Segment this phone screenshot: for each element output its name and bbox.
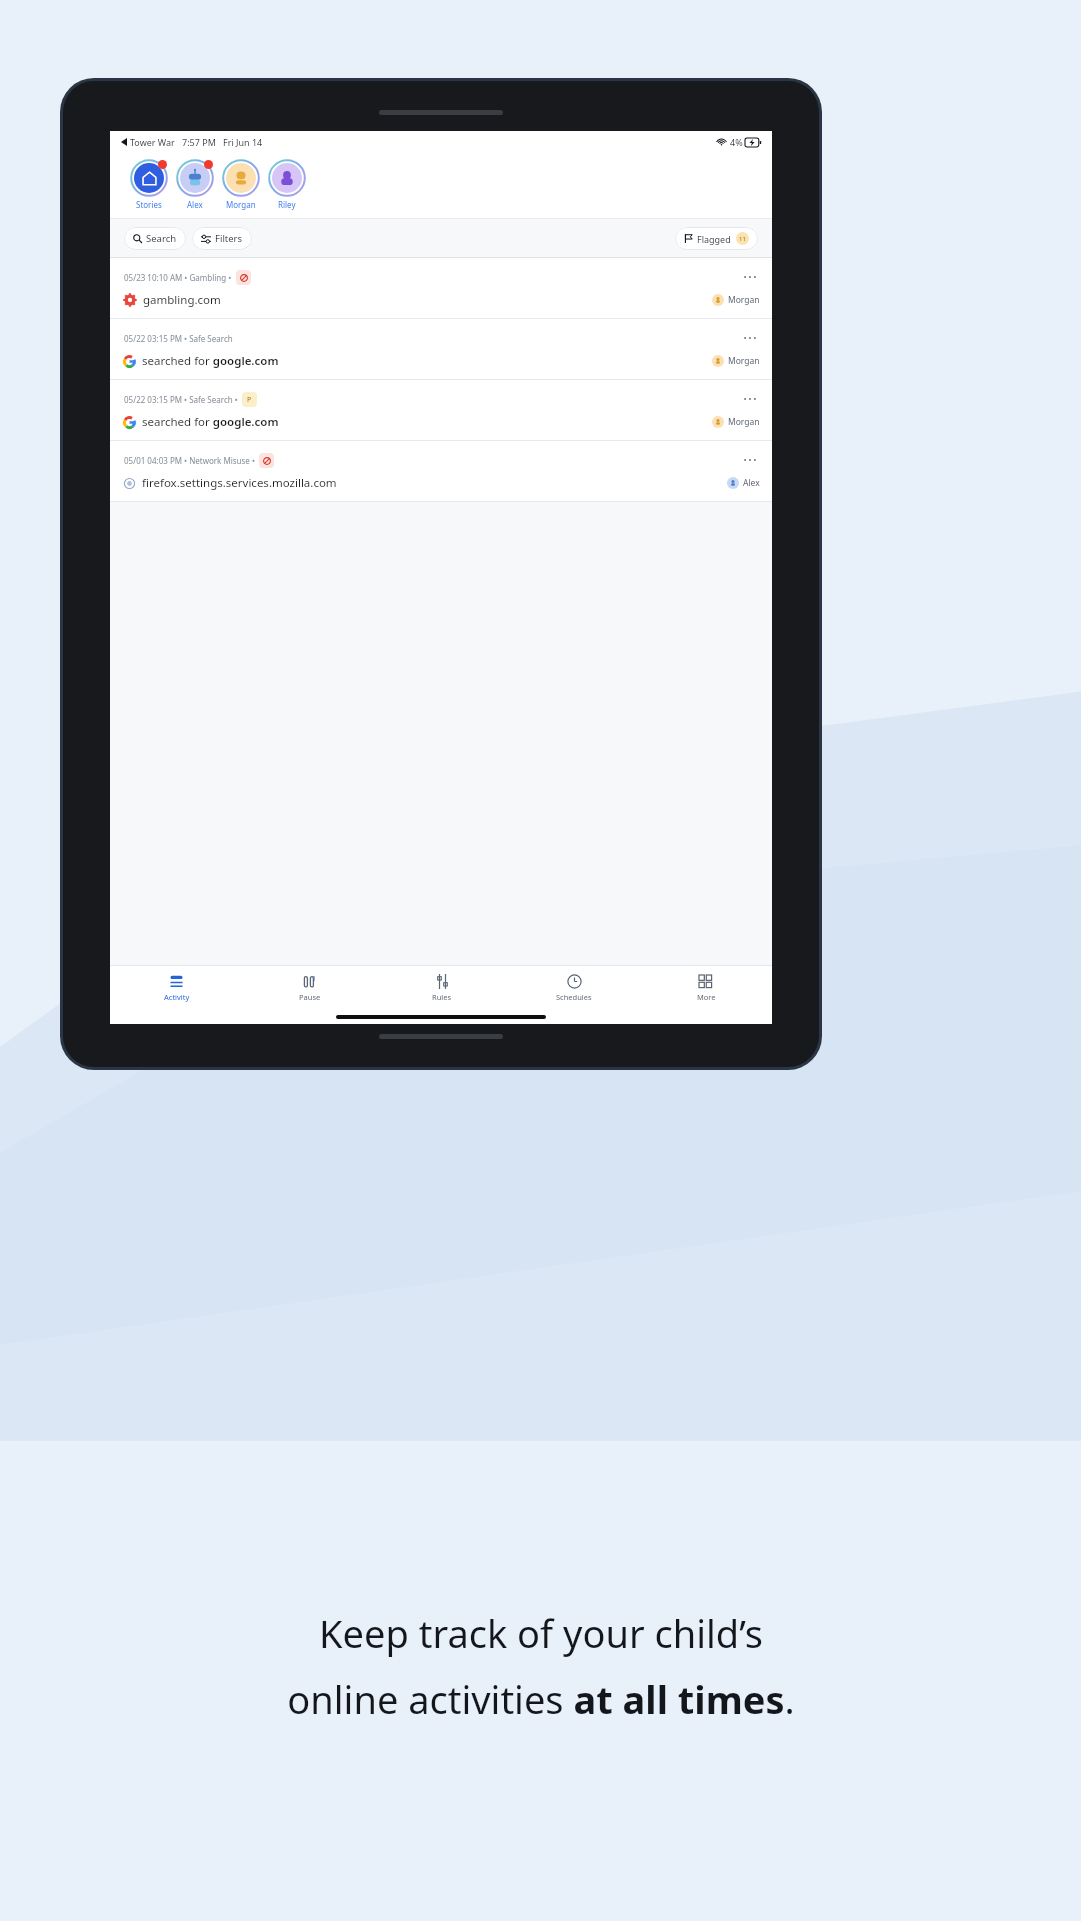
button[interactable]: More options: [740, 450, 760, 470]
staticText: 05/23 10:10 AM • Gambling •: [124, 272, 232, 283]
staticText: firefox.settings.services.mozilla.com: [142, 475, 337, 491]
staticText: Riley: [278, 199, 296, 210]
staticText: Activity: [164, 992, 190, 1002]
staticText: Morgan: [226, 199, 256, 210]
staticText: searched for google.com: [142, 414, 279, 430]
staticText: Flagged: [697, 233, 731, 245]
staticText: Fri Jun 14: [223, 136, 263, 148]
staticText: 05/22 03:15 PM • Safe Search: [124, 333, 233, 344]
button[interactable]: Stories: [126, 159, 172, 210]
button[interactable]: Riley: [264, 159, 310, 210]
staticText: Schedules: [556, 992, 592, 1002]
staticText: Keep track of your child’s: [319, 1607, 763, 1659]
staticText: Alex: [743, 477, 760, 489]
staticText: Stories: [136, 199, 162, 210]
staticText: P: [247, 395, 252, 405]
staticText: Rules: [432, 992, 452, 1002]
button[interactable]: 1: [243, 966, 376, 1010]
staticText: More: [697, 992, 716, 1002]
staticText: Morgan: [728, 416, 760, 428]
staticText: gambling.com: [143, 292, 221, 308]
staticText: Morgan: [728, 355, 760, 367]
button[interactable]: More options: [740, 328, 760, 348]
staticText: Search: [146, 232, 177, 245]
staticText: online activities at all times.: [287, 1673, 795, 1725]
staticText: searched for google.com: [142, 353, 279, 369]
button[interactable]: Schedules: [508, 966, 640, 1010]
staticText: 05/22 03:15 PM • Safe Search •: [124, 394, 238, 405]
button[interactable]: More options: [740, 389, 760, 409]
staticText: Morgan: [728, 294, 760, 306]
staticText: Tower War: [130, 136, 175, 148]
button[interactable]: Search: [124, 227, 186, 250]
button[interactable]: 05/22 03:15 PM • Safe Search: [110, 319, 772, 379]
staticText: 4%: [730, 136, 743, 148]
button[interactable]: Alex: [172, 159, 218, 210]
staticText: Pause: [299, 992, 321, 1002]
staticText: 11: [739, 235, 746, 243]
staticText: Alex: [187, 199, 203, 210]
button[interactable]: Rules: [376, 966, 508, 1010]
staticText: 1: [312, 974, 317, 984]
button[interactable]: More options: [740, 267, 760, 287]
button[interactable]: Filters: [192, 227, 252, 250]
staticText: 7:57 PM: [182, 136, 216, 148]
button[interactable]: More: [640, 966, 772, 1010]
staticText: Filters: [215, 232, 243, 245]
button[interactable]: Flagged: [675, 227, 758, 250]
button[interactable]: Morgan: [218, 159, 264, 210]
button[interactable]: Activity: [110, 966, 243, 1010]
button[interactable]: 05/22 03:15 PM • Safe Search •: [110, 380, 772, 440]
button[interactable]: 05/01 04:03 PM • Network Misuse •: [110, 441, 772, 501]
button[interactable]: 05/23 10:10 AM • Gambling •: [110, 258, 772, 318]
staticText: 05/01 04:03 PM • Network Misuse •: [124, 455, 255, 466]
